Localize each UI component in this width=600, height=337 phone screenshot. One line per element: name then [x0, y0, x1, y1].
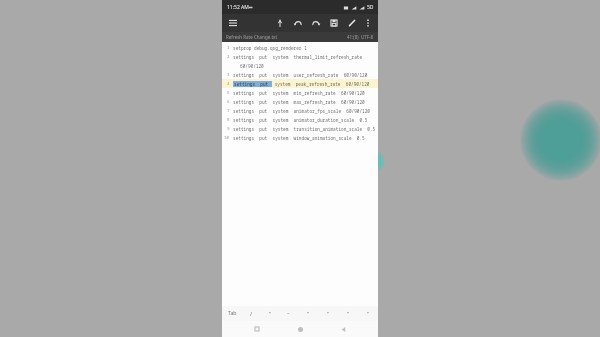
button[interactable]: Undo — [292, 17, 304, 29]
button[interactable]: 9 — [222, 124, 378, 133]
staticText: settings put system window_animation_sca… — [233, 135, 365, 141]
button[interactable]: More options — [362, 17, 374, 29]
button[interactable]: 6 — [222, 97, 378, 106]
button[interactable]: Paste — [274, 17, 286, 29]
button[interactable]: – — [279, 306, 298, 321]
button[interactable]: Tab — [222, 306, 242, 321]
staticText: 5 — [227, 90, 230, 96]
staticText: Refresh Rate Change.txt — [226, 34, 278, 40]
button[interactable]: 4 — [222, 79, 378, 88]
button[interactable]: Save — [328, 17, 340, 29]
button[interactable]: 7 — [222, 106, 378, 115]
staticText: • — [327, 310, 329, 317]
staticText: settings put system thermal_limit_refres… — [233, 54, 363, 60]
staticText: / — [250, 310, 253, 317]
staticText: 5D — [367, 4, 374, 11]
button[interactable]: • — [338, 306, 358, 321]
button[interactable]: • — [358, 306, 378, 321]
button[interactable]: 5 — [222, 88, 378, 97]
staticText: settings put — [234, 81, 271, 87]
staticText: system peak_refresh_rate 60/90/120 — [272, 81, 370, 87]
button[interactable]: Redo — [310, 17, 322, 29]
staticText: settings put system min_refresh_rate 60/… — [233, 90, 365, 96]
staticText: settings put system transition_animation… — [233, 126, 376, 132]
staticText: setprop debug.qsg_renderer 1 — [233, 45, 307, 51]
staticText: settings put system max_refresh_rate 60/… — [233, 99, 365, 105]
button[interactable]: 8 — [222, 115, 378, 124]
button[interactable]: 1 — [222, 43, 378, 52]
button[interactable]: 3 — [222, 70, 378, 79]
staticText: 8 — [227, 117, 230, 123]
staticText: settings put system animator_duration_sc… — [233, 117, 368, 123]
staticText: 11:52 AM — [227, 4, 249, 11]
staticText: 6 — [227, 99, 230, 105]
button[interactable]: Home — [292, 321, 308, 337]
button[interactable]: 60/90/120 — [222, 61, 378, 70]
staticText: settings put system user_refresh_rate 60… — [233, 72, 368, 78]
button[interactable]: Menu — [226, 16, 240, 30]
staticText: 10 — [224, 135, 230, 141]
button[interactable]: • — [318, 306, 338, 321]
button[interactable]: • — [260, 306, 279, 321]
button[interactable]: • — [298, 306, 318, 321]
button[interactable]: / — [242, 306, 260, 321]
button[interactable]: Recent apps — [249, 321, 265, 337]
staticText: 1 — [227, 45, 230, 51]
staticText: • — [367, 310, 369, 317]
staticText: 9 — [227, 126, 230, 132]
staticText: • — [307, 310, 309, 317]
button[interactable]: Edit — [346, 17, 358, 29]
button[interactable]: Back — [335, 321, 351, 337]
staticText: 60/90/120 — [240, 63, 264, 69]
staticText: 7 — [227, 108, 230, 114]
staticText: • — [269, 310, 271, 317]
button[interactable]: 10 — [222, 133, 378, 142]
staticText: 2 — [227, 54, 230, 60]
staticText: 4 — [227, 81, 230, 87]
staticText: – — [287, 310, 290, 317]
staticText: • — [347, 310, 349, 317]
button[interactable]: 2 — [222, 52, 378, 61]
staticText: 41:(8) UTF-8 — [347, 34, 374, 40]
staticText: settings put system animator_fps_scale 6… — [233, 108, 370, 114]
staticText: 3 — [227, 72, 230, 78]
staticText: Tab — [228, 310, 237, 317]
